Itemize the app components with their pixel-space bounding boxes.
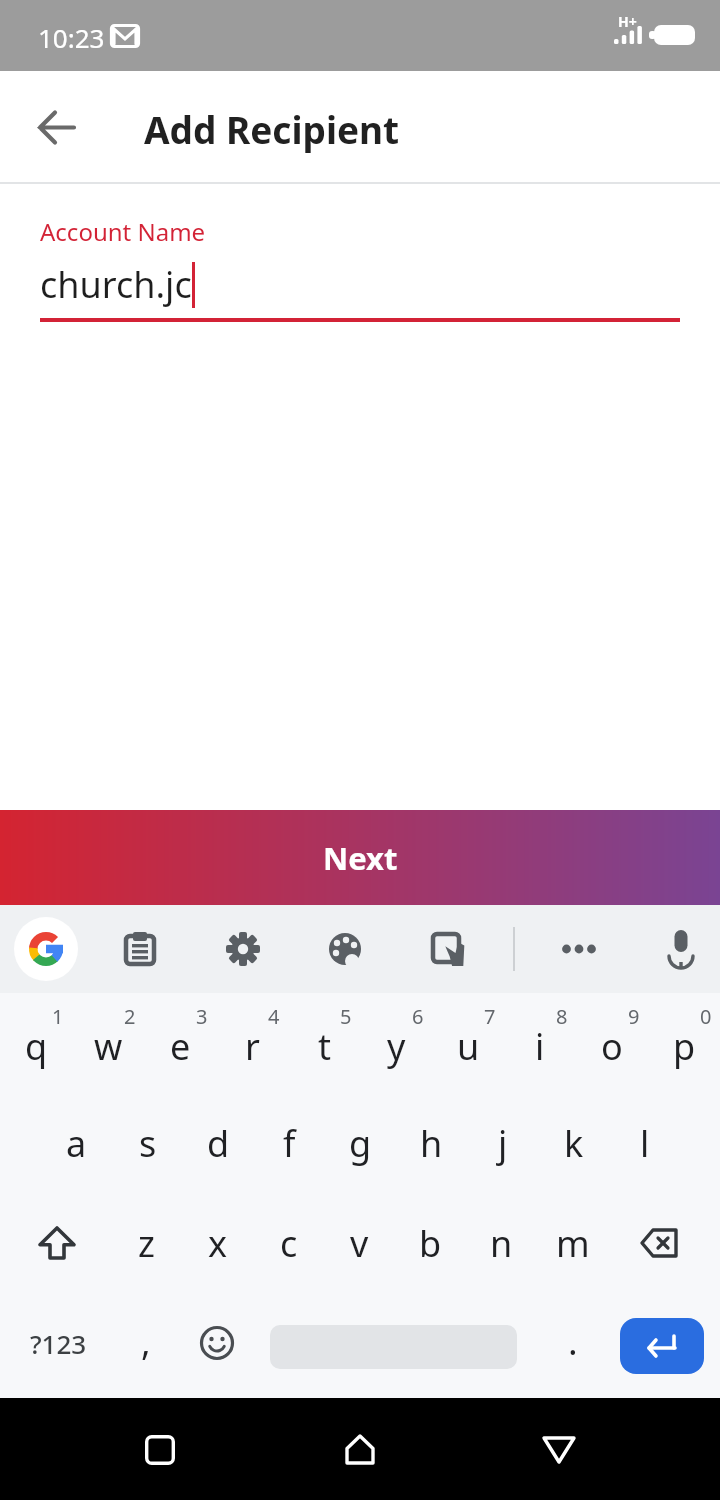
staticText: x	[208, 1219, 228, 1268]
button[interactable]: x	[182, 1193, 253, 1293]
button[interactable]: h	[396, 1093, 467, 1193]
button[interactable]: m	[537, 1193, 608, 1293]
button[interactable]: ,	[110, 1303, 182, 1383]
button[interactable]: v	[324, 1193, 395, 1293]
button[interactable]: o	[576, 993, 648, 1093]
button[interactable]: b	[395, 1193, 466, 1293]
staticText: 8	[556, 1003, 568, 1030]
button[interactable]: z	[111, 1193, 182, 1293]
button[interactable]	[328, 932, 362, 966]
staticText: h	[420, 1119, 443, 1168]
button[interactable]: a	[41, 1093, 112, 1193]
staticText: 4	[268, 1003, 280, 1030]
button[interactable]: Next	[0, 810, 720, 905]
staticText: a	[66, 1119, 87, 1168]
staticText: Next	[323, 837, 398, 879]
button[interactable]	[120, 1410, 200, 1490]
button[interactable]: j	[467, 1093, 538, 1193]
staticText: i	[535, 1022, 545, 1071]
staticText: u	[457, 1022, 480, 1071]
button[interactable]: g	[325, 1093, 396, 1193]
staticText: 2	[124, 1003, 136, 1030]
button[interactable]: p	[648, 993, 720, 1093]
staticText: Account Name	[40, 215, 206, 248]
button[interactable]	[14, 917, 78, 981]
staticText: Add Recipient	[144, 104, 400, 154]
button[interactable]	[620, 1318, 704, 1374]
button[interactable]: d	[183, 1093, 254, 1193]
staticText: g	[349, 1119, 372, 1168]
button[interactable]: w	[72, 993, 144, 1093]
button[interactable]	[624, 1211, 698, 1275]
button[interactable]: r	[216, 993, 288, 1093]
staticText: r	[245, 1022, 260, 1071]
button[interactable]: .	[537, 1303, 609, 1383]
staticText: z	[138, 1219, 155, 1268]
button[interactable]: n	[466, 1193, 537, 1293]
staticText: y	[387, 1022, 406, 1071]
staticText: w	[94, 1022, 123, 1071]
button[interactable]	[20, 1211, 94, 1275]
staticText: 6	[412, 1003, 424, 1030]
staticText: t	[318, 1022, 331, 1071]
staticText: 10:23	[38, 20, 105, 55]
staticText: 7	[484, 1003, 496, 1030]
staticText: o	[601, 1022, 623, 1071]
button[interactable]: l	[609, 1093, 680, 1193]
staticText: 0	[700, 1003, 712, 1030]
button[interactable]: q	[0, 993, 72, 1093]
button[interactable]	[519, 1410, 599, 1490]
button[interactable]: i	[504, 993, 576, 1093]
button[interactable]	[123, 932, 157, 966]
staticText: 9	[628, 1003, 640, 1030]
staticText: e	[170, 1022, 191, 1071]
staticText: p	[673, 1022, 696, 1071]
staticText: 3	[196, 1003, 208, 1030]
staticText: m	[556, 1219, 590, 1268]
button[interactable]: ?123	[18, 1303, 98, 1383]
button[interactable]	[431, 932, 465, 966]
staticText: b	[419, 1219, 442, 1268]
staticText: s	[139, 1119, 157, 1168]
button[interactable]: y	[360, 993, 432, 1093]
button[interactable]	[664, 930, 698, 964]
staticText: k	[564, 1119, 584, 1168]
staticText: .	[568, 1317, 578, 1366]
staticText: H+	[618, 12, 637, 31]
staticText: v	[350, 1219, 369, 1268]
button[interactable]	[22, 93, 90, 161]
button[interactable]: u	[432, 993, 504, 1093]
staticText: church.jc	[40, 260, 192, 309]
staticText: ,	[141, 1317, 151, 1366]
staticText: d	[207, 1119, 230, 1168]
button[interactable]: f	[254, 1093, 325, 1193]
staticText: n	[490, 1219, 513, 1268]
staticText: 5	[340, 1003, 352, 1030]
button[interactable]	[320, 1410, 400, 1490]
button[interactable]	[181, 1303, 253, 1383]
staticText: j	[498, 1119, 508, 1168]
button[interactable]: t	[288, 993, 360, 1093]
staticText: c	[280, 1219, 298, 1268]
button[interactable]	[226, 932, 260, 966]
button[interactable]	[562, 932, 596, 966]
staticText: 1	[52, 1003, 64, 1030]
button[interactable]: e	[144, 993, 216, 1093]
staticText: f	[283, 1119, 296, 1168]
button[interactable]: c	[253, 1193, 324, 1293]
staticText: ?123	[30, 1326, 87, 1361]
staticText: l	[640, 1119, 650, 1168]
staticText: q	[25, 1022, 48, 1071]
button[interactable]: k	[538, 1093, 609, 1193]
button[interactable]: s	[112, 1093, 183, 1193]
